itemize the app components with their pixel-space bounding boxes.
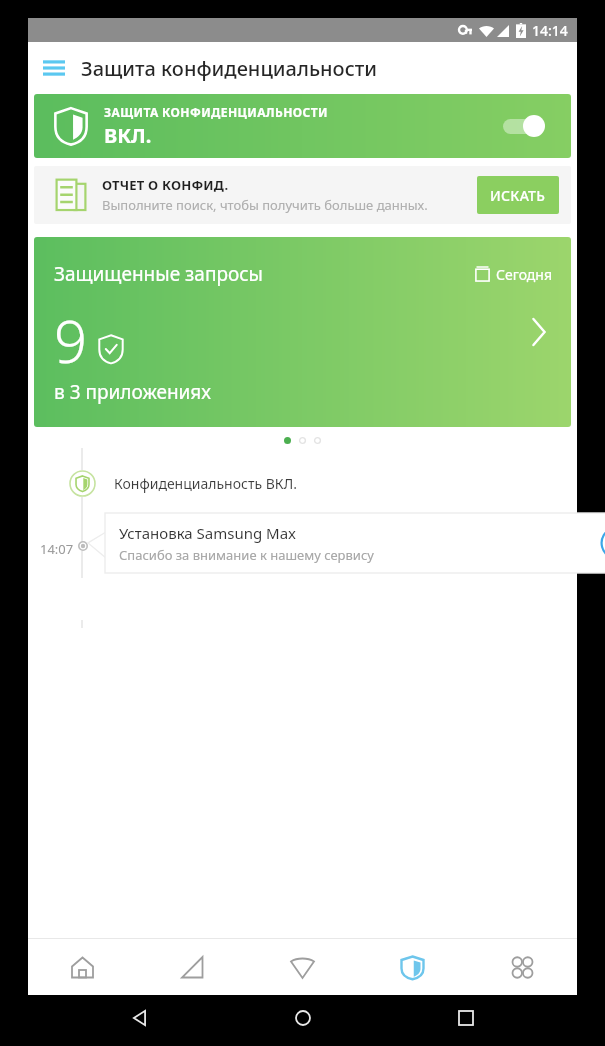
button[interactable]: Home xyxy=(28,939,137,995)
staticText: 9 xyxy=(54,301,88,380)
staticText: Установка Samsung Max xyxy=(119,523,297,543)
staticText: Конфиденциальность ВКЛ. xyxy=(114,474,298,493)
button[interactable]: More xyxy=(467,939,577,995)
button[interactable]: ЗАЩИТА КОНФИДЕНЦИАЛЬНОСТИ xyxy=(34,94,571,158)
button[interactable]: Privacy protection xyxy=(357,939,467,995)
button[interactable]: Wi-Fi xyxy=(247,939,357,995)
staticText: ВКЛ. xyxy=(104,122,152,149)
button[interactable]: Recents xyxy=(442,1003,490,1033)
button[interactable]: ОТЧЕТ О КОНФИД. xyxy=(34,166,571,224)
staticText: ИСКАТЬ xyxy=(490,186,546,205)
staticText: 14:14 xyxy=(532,21,568,40)
button[interactable]: Data usage xyxy=(137,939,247,995)
button[interactable]: Menu xyxy=(28,42,80,94)
staticText: Защита конфиденциальности xyxy=(81,55,377,82)
staticText: Спасибо за внимание к нашему сервису xyxy=(119,546,374,564)
staticText: Защищенные запросы xyxy=(54,261,264,287)
staticText: в 3 приложениях xyxy=(54,379,212,405)
staticText: ОТЧЕТ О КОНФИД. xyxy=(102,176,229,194)
staticText: ЗАЩИТА КОНФИДЕНЦИАЛЬНОСТИ xyxy=(104,104,328,120)
staticText: Сегодня xyxy=(496,265,553,284)
button[interactable]: Защищенные запросы xyxy=(34,237,571,427)
button[interactable]: Back xyxy=(115,1003,163,1033)
staticText: 14:07 xyxy=(40,540,74,558)
staticText: Выполните поиск, чтобы получить больше д… xyxy=(102,196,428,214)
button[interactable]: ИСКАТЬ xyxy=(477,176,559,214)
button[interactable]: Home xyxy=(279,1003,327,1033)
button[interactable]: Toggle privacy protection xyxy=(503,106,557,146)
button[interactable]: Установка Samsung Max xyxy=(105,513,605,573)
